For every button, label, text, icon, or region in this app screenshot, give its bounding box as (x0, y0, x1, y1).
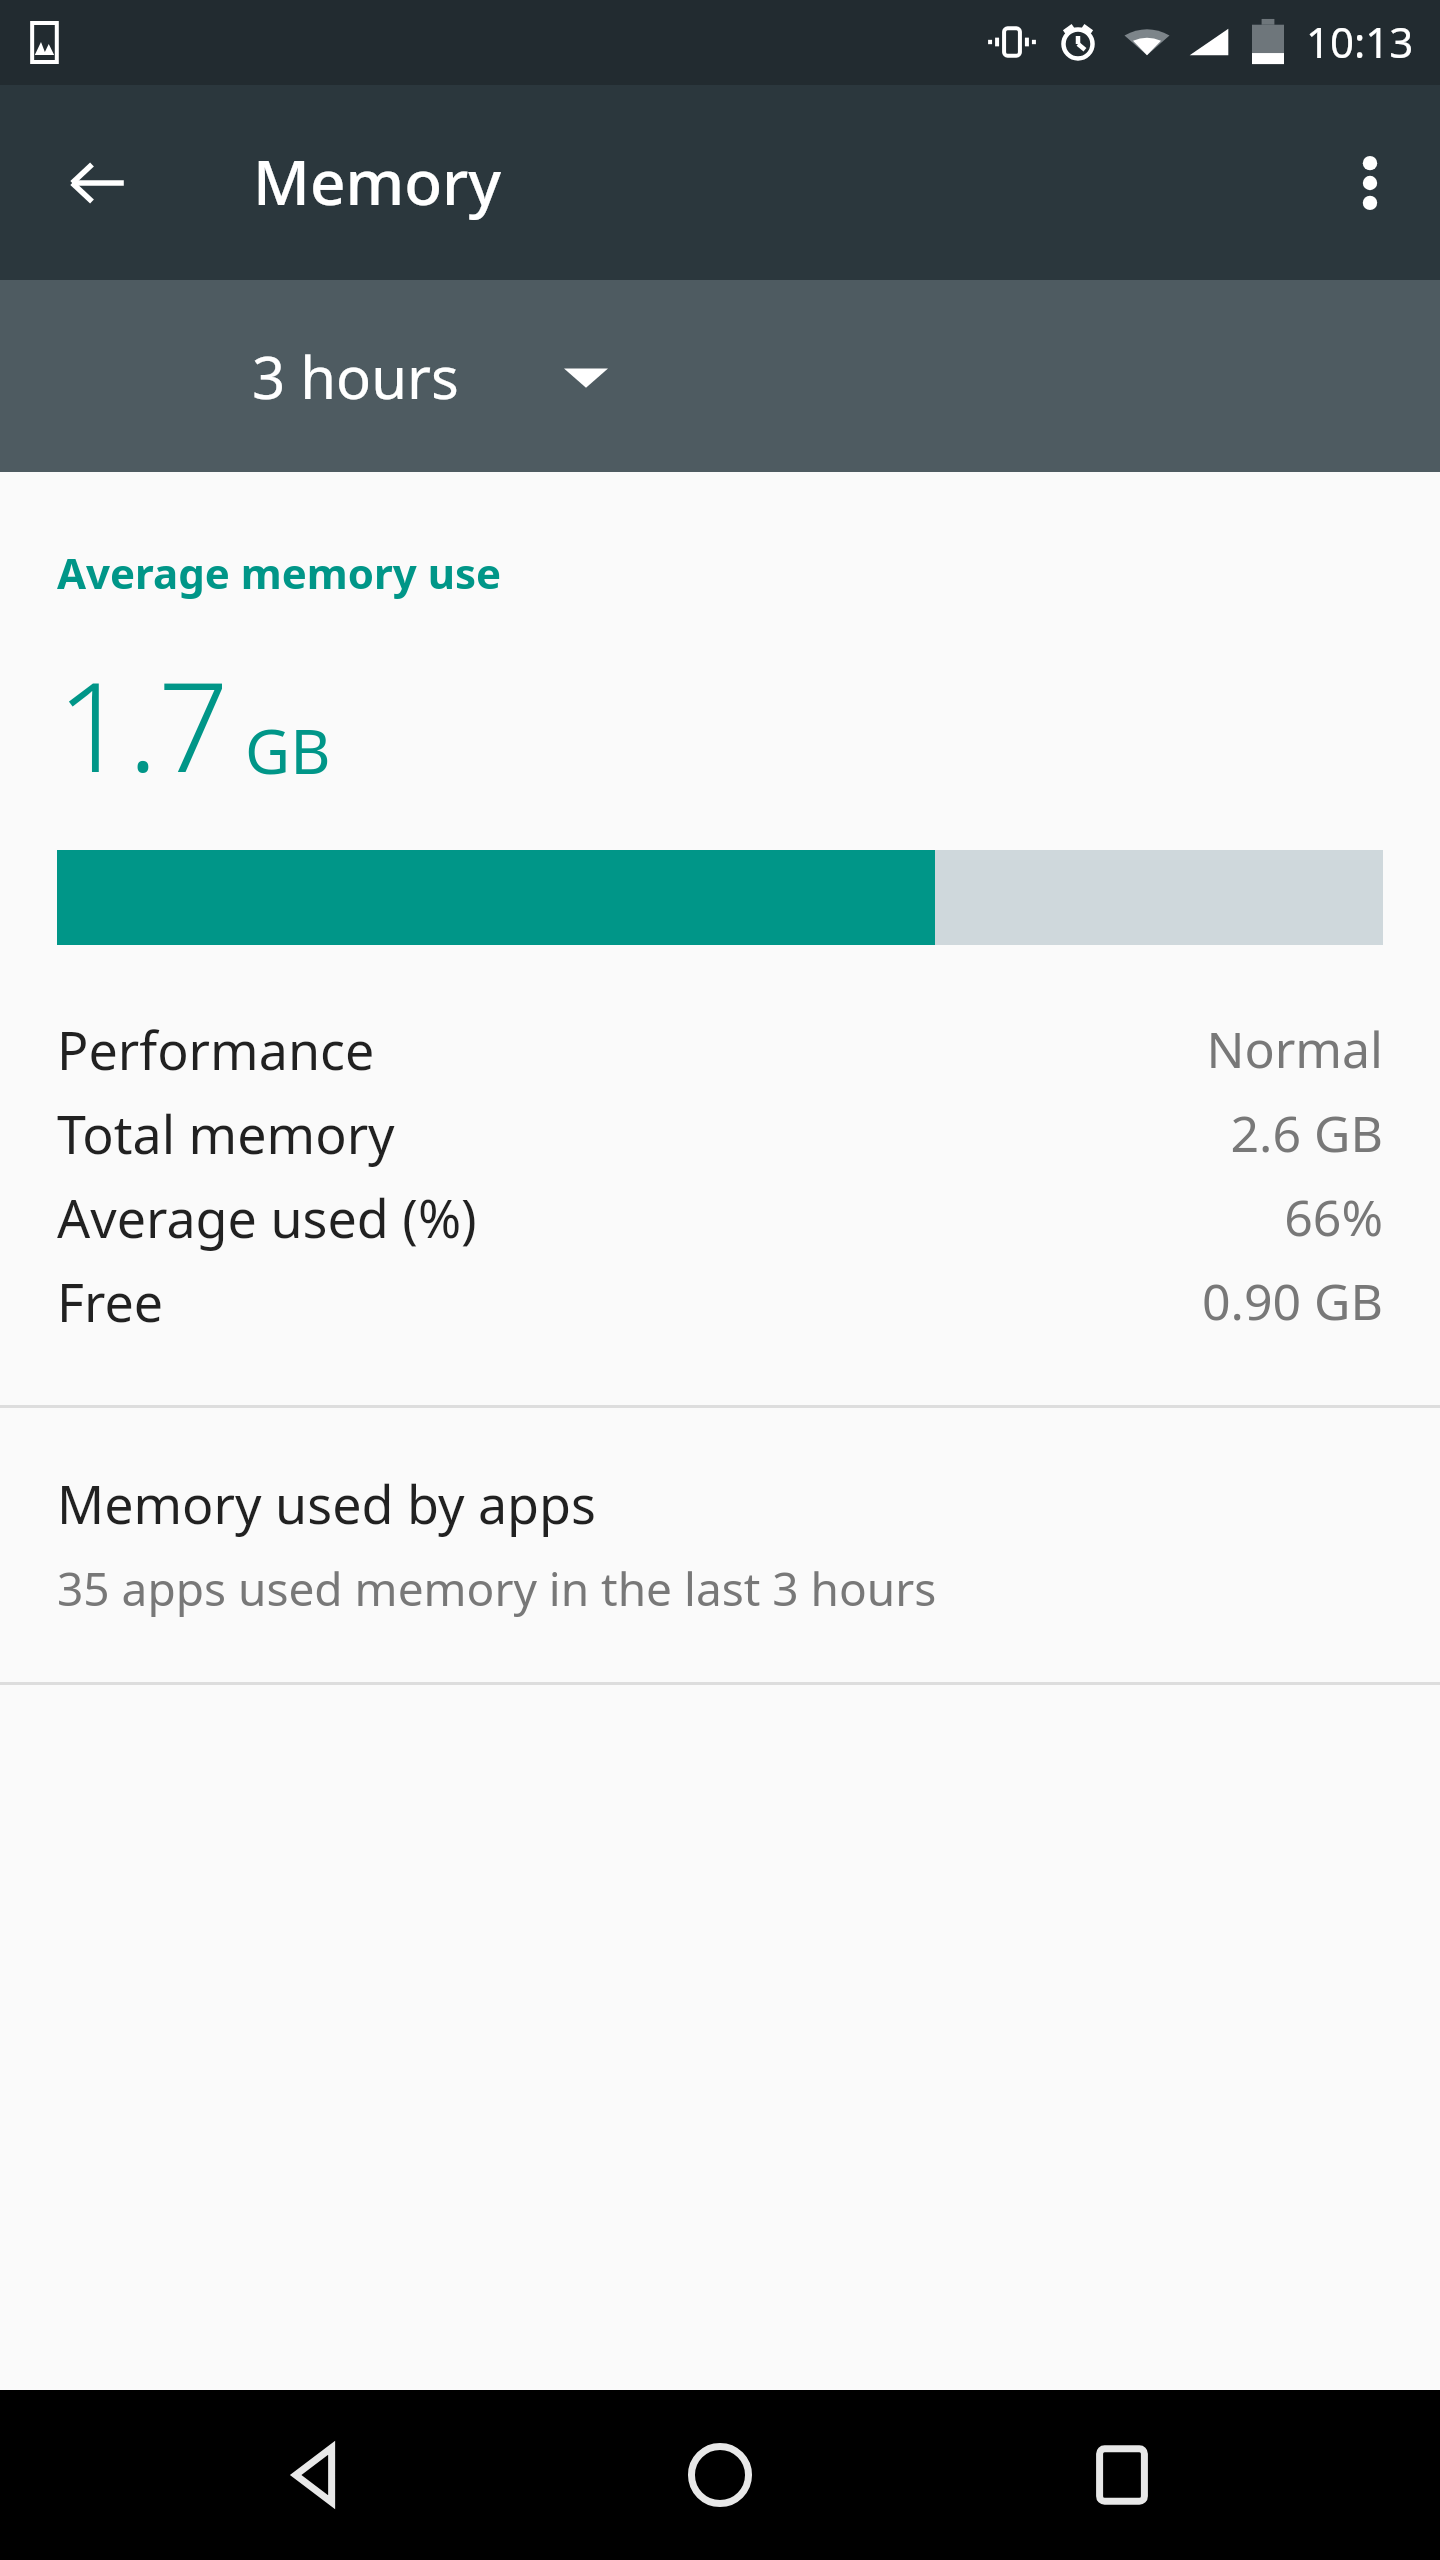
staticText: 10:13 (1306, 13, 1414, 70)
staticText: Average used (%) (57, 1182, 477, 1253)
staticText: Memory (253, 139, 502, 223)
staticText: Normal (1206, 1015, 1383, 1083)
staticText: Total memory (57, 1098, 395, 1169)
button[interactable]: Total memory (0, 1091, 1440, 1175)
button[interactable]: Home (640, 2395, 800, 2555)
staticText: 0.90 GB (1201, 1267, 1383, 1335)
button[interactable]: Recent apps (1042, 2395, 1202, 2555)
staticText: Performance (57, 1014, 375, 1085)
button[interactable]: Free (0, 1259, 1440, 1343)
staticText: 35 apps used memory in the last 3 hours (57, 1557, 937, 1620)
staticText: 66% (1284, 1183, 1383, 1251)
staticText: Memory used by apps (57, 1468, 596, 1539)
button[interactable]: Performance (0, 1007, 1440, 1091)
button[interactable]: More options (1322, 135, 1418, 231)
staticText: 2.6 GB (1230, 1099, 1383, 1167)
button[interactable]: Navigate up (50, 135, 146, 231)
button[interactable]: Average used (%) (0, 1175, 1440, 1259)
button[interactable]: 3 hours (252, 337, 608, 416)
staticText: Free (57, 1266, 164, 1337)
button[interactable]: Back (238, 2395, 398, 2555)
staticText: GB (245, 708, 331, 792)
staticText: 1.7 (57, 639, 229, 808)
staticText: 3 hours (252, 337, 459, 416)
staticText: Average memory use (57, 544, 502, 601)
button[interactable]: Memory used by apps (0, 1408, 1440, 1682)
